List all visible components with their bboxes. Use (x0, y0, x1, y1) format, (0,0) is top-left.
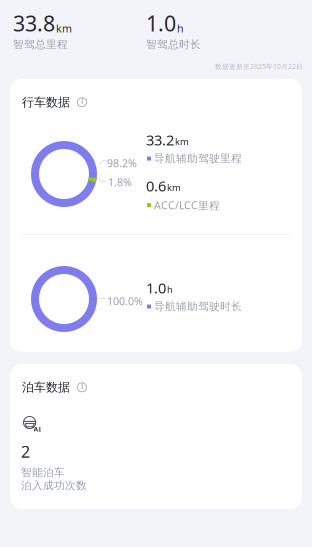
button[interactable]: 行车数据说明 (22, 95, 93, 115)
staticText: km (167, 181, 181, 193)
button[interactable]: 泊车数据说明 (22, 380, 93, 400)
staticText: 33.2 (146, 130, 174, 149)
staticText: km (56, 21, 72, 35)
staticText: 1.8% (108, 175, 132, 189)
staticText: 智能泊车 (21, 466, 65, 479)
staticText: 1.0 (146, 278, 166, 297)
staticText: km (175, 135, 189, 147)
staticText: ACC/LCC里程 (154, 198, 220, 212)
staticText: 2 (21, 441, 30, 462)
staticText: AI (33, 424, 41, 433)
staticText: 0.6 (146, 176, 166, 195)
staticText: 智驾总时长 (146, 38, 201, 51)
staticText: h (177, 21, 184, 35)
staticText: 导航辅助驾驶里程 (154, 152, 242, 165)
staticText: i (81, 94, 83, 107)
staticText: 数据更新至2025年10月22日 (215, 62, 303, 71)
staticText: 行车数据 (22, 95, 70, 110)
staticText: 泊入成功次数 (21, 479, 87, 492)
staticText: 智驾总里程 (13, 38, 68, 51)
staticText: 33.8 (13, 9, 55, 37)
staticText: 98.2% (107, 156, 137, 170)
staticText: 1.0 (146, 9, 176, 37)
staticText: h (167, 283, 173, 295)
staticText: 100.0% (107, 294, 143, 308)
staticText: 导航辅助驾驶时长 (154, 300, 242, 313)
staticText: 泊车数据 (22, 380, 70, 395)
staticText: i (81, 379, 83, 392)
